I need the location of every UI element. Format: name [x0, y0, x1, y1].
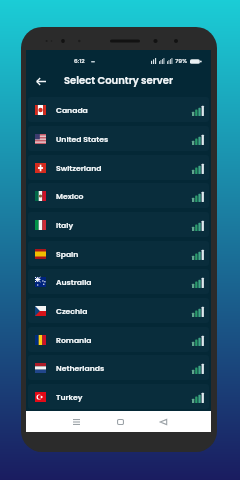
button[interactable]: United States — [28, 126, 209, 151]
button[interactable]: Switzerland — [28, 155, 209, 180]
staticText: Italy — [56, 220, 74, 231]
staticText: Romania — [56, 335, 92, 346]
staticText: Czechia — [56, 306, 88, 317]
staticText: United States — [56, 134, 109, 145]
staticText: Switzerland — [56, 163, 102, 174]
staticText: Netherlands — [56, 363, 105, 374]
button[interactable]: Back — [153, 411, 173, 432]
staticText: Spain — [56, 249, 79, 260]
button[interactable]: Recent apps — [66, 411, 86, 432]
staticText: Canada — [56, 105, 88, 116]
button[interactable]: Back — [32, 72, 50, 90]
staticText: Turkey — [56, 392, 83, 403]
staticText: 6:12 — [74, 57, 85, 65]
staticText: Select Country server — [64, 73, 173, 87]
staticText: Mexico — [56, 191, 84, 202]
button[interactable]: Romania — [28, 327, 209, 352]
button[interactable]: Spain — [28, 241, 209, 266]
button[interactable]: Turkey — [28, 384, 209, 409]
button[interactable]: Australia — [28, 269, 209, 294]
button[interactable]: Mexico — [28, 183, 209, 208]
button[interactable]: Home — [110, 411, 130, 432]
staticText: Australia — [56, 277, 92, 288]
staticText: 79% — [175, 57, 187, 65]
button[interactable]: Czechia — [28, 298, 209, 323]
button[interactable]: Italy — [28, 212, 209, 237]
button[interactable]: Canada — [28, 97, 209, 122]
button[interactable]: Netherlands — [28, 355, 209, 380]
